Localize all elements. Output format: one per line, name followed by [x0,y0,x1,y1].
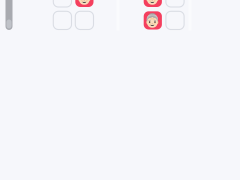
button[interactable]: Slot 7 [144,11,162,29]
staticText: 👵🏻 [144,13,161,28]
button[interactable]: Slot 3 [53,11,71,29]
button[interactable]: Slot 4 [75,11,93,29]
button[interactable]: Slot 2 [75,0,93,7]
staticText: 👵🏻 [76,0,93,5]
staticText: 👵🏻 [144,0,161,5]
button[interactable]: Slot 1 [53,0,71,7]
button[interactable]: Slot 8 [166,11,184,29]
button[interactable]: Slot 6 [166,0,184,7]
button[interactable]: Slot 5 [144,0,162,7]
